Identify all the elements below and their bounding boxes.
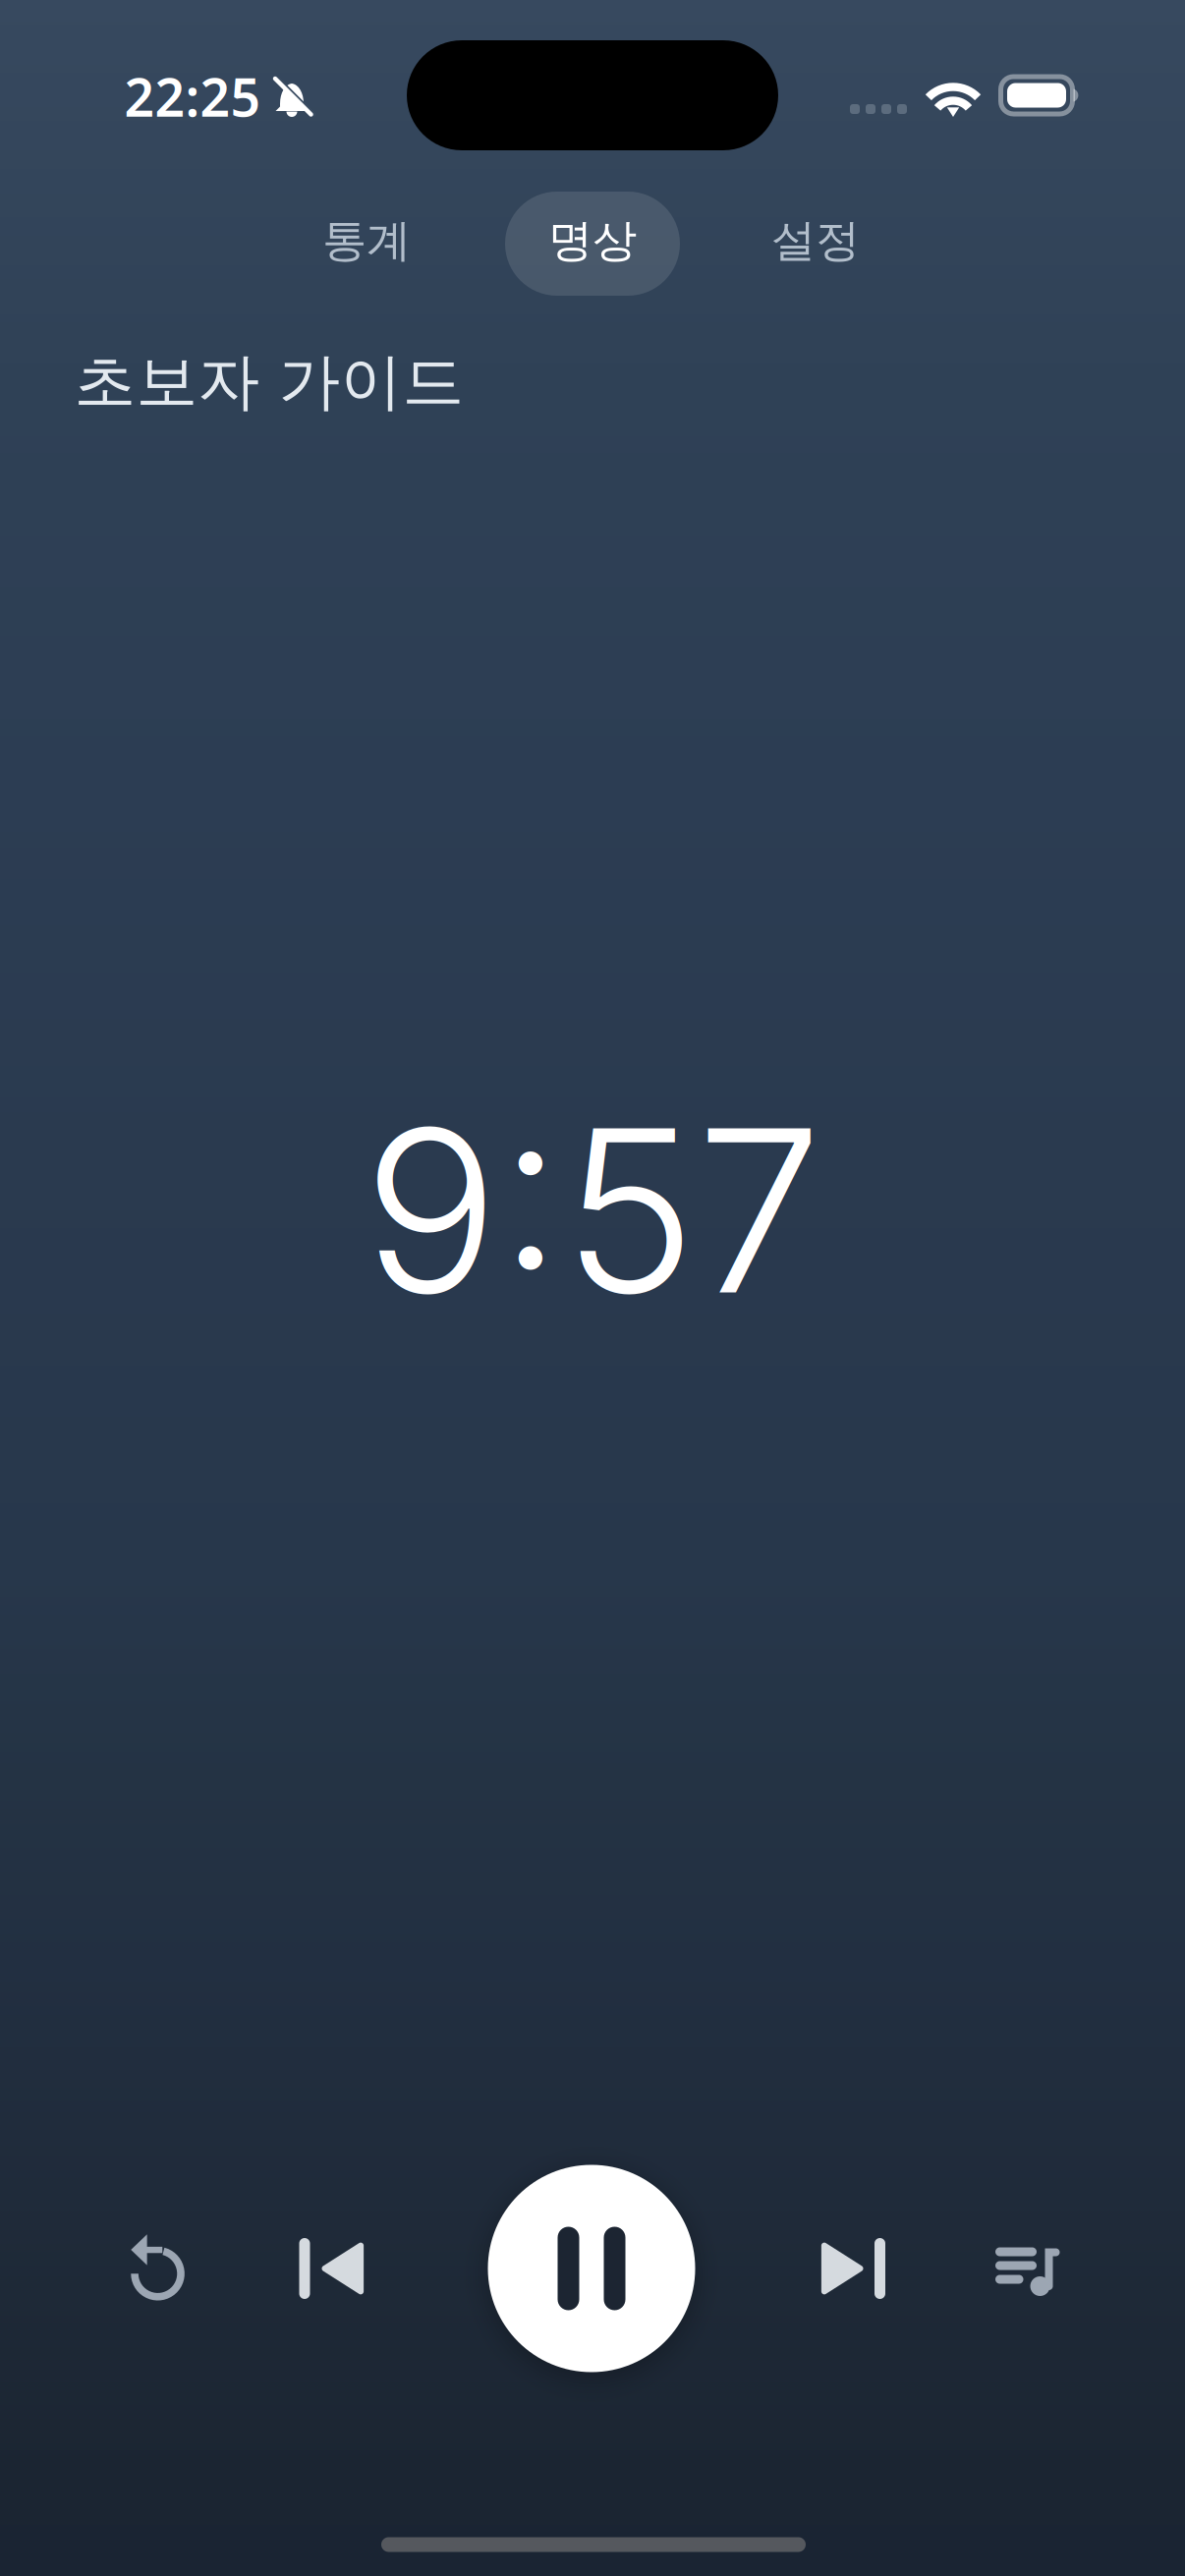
staticText: 초보자 가이드	[74, 343, 464, 421]
staticText: 통계	[322, 213, 411, 269]
button[interactable]: Rewind	[99, 2209, 217, 2326]
staticText: 22:25	[124, 62, 261, 131]
button[interactable]: Next track	[795, 2210, 913, 2327]
staticText: 9:57	[363, 1074, 822, 1347]
button[interactable]: 명상	[505, 192, 680, 296]
button[interactable]: Previous track	[272, 2210, 390, 2327]
button[interactable]: Queue	[969, 2213, 1087, 2331]
staticText: 설정	[771, 213, 860, 269]
button[interactable]: 설정	[742, 189, 889, 292]
button[interactable]: 통계	[293, 189, 440, 292]
staticText: 명상	[548, 213, 637, 269]
button[interactable]: Pause	[488, 2165, 695, 2372]
